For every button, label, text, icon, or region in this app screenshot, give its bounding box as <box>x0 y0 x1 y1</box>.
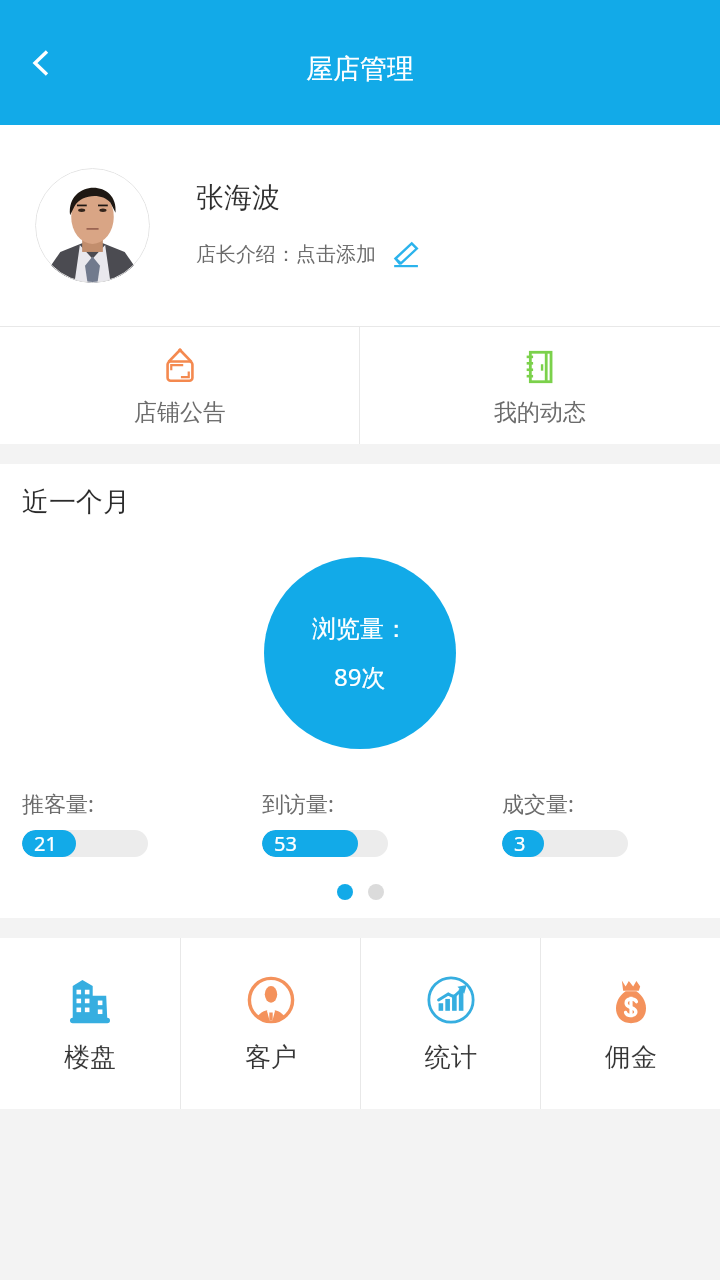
staticText: 楼盘 <box>64 1041 116 1074</box>
staticText: 53 <box>274 830 297 857</box>
button[interactable]: 我的动态 <box>360 327 720 444</box>
staticText: 屋店管理 <box>306 52 414 86</box>
staticText: 成交量: <box>502 788 574 818</box>
staticText: 张海波 <box>196 180 280 215</box>
staticText: 统计 <box>425 1041 477 1074</box>
button[interactable]: Back <box>4 26 78 100</box>
staticText: 我的动态 <box>494 398 586 427</box>
staticText: 店长介绍：点击添加 <box>196 242 376 267</box>
button[interactable]: 楼盘 <box>0 938 180 1109</box>
button[interactable]: 店铺公告 <box>0 327 359 444</box>
staticText: 佣金 <box>605 1041 657 1074</box>
button[interactable]: 3 <box>502 830 628 857</box>
button[interactable]: Edit introduction <box>388 237 422 271</box>
staticText: 89次 <box>334 660 386 693</box>
staticText: 浏览量： <box>312 614 408 644</box>
staticText: 近一个月 <box>22 485 130 519</box>
button[interactable]: 浏览量： <box>264 557 456 749</box>
staticText: 3 <box>514 830 526 857</box>
staticText: 到访量: <box>262 788 334 818</box>
staticText: 21 <box>34 830 57 857</box>
button[interactable]: 佣金 <box>541 938 720 1109</box>
button[interactable]: 21 <box>22 830 148 857</box>
staticText: 客户 <box>245 1041 297 1074</box>
staticText: 店铺公告 <box>134 398 226 427</box>
staticText: 推客量: <box>22 788 94 818</box>
button[interactable]: 客户 <box>181 938 360 1109</box>
button[interactable]: 53 <box>262 830 388 857</box>
button[interactable]: 统计 <box>361 938 540 1109</box>
button[interactable]: 张海波 <box>0 125 720 326</box>
